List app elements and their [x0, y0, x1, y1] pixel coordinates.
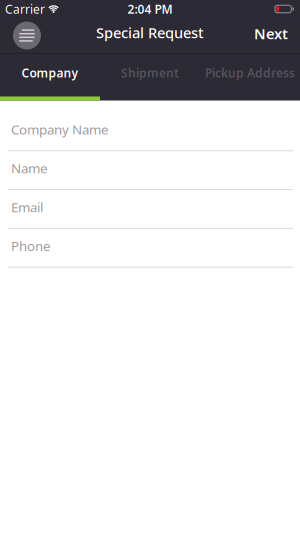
staticText: Special Request — [96, 23, 204, 42]
button[interactable]: Menu — [13, 21, 41, 49]
staticText: Phone — [11, 237, 51, 255]
staticText: Shipment — [121, 65, 179, 81]
staticText: Carrier — [5, 1, 45, 17]
button[interactable]: Company — [0, 54, 100, 96]
button[interactable]: Pickup Address — [200, 54, 300, 96]
staticText: Pickup Address — [205, 65, 295, 81]
staticText: Name — [11, 159, 48, 177]
staticText: Company — [21, 65, 78, 81]
button[interactable]: Next — [254, 26, 288, 45]
staticText: 2:04 PM — [127, 1, 172, 17]
button[interactable]: Shipment — [100, 54, 200, 96]
staticText: Company Name — [11, 120, 109, 138]
staticText: Email — [11, 198, 43, 216]
staticText: Next — [254, 24, 288, 43]
